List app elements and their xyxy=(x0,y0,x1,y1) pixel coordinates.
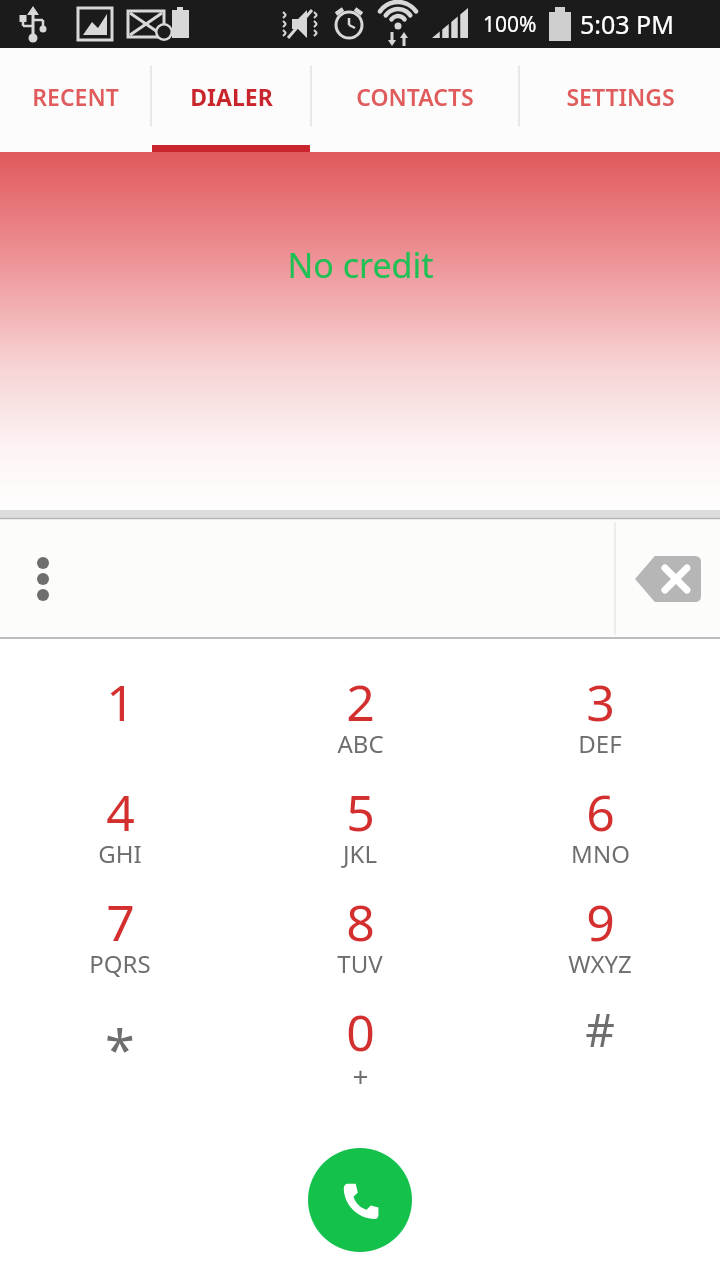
staticText: SETTINGS xyxy=(566,81,675,112)
button[interactable]: 2 xyxy=(250,668,470,778)
button[interactable]: RECENT xyxy=(0,48,151,152)
staticText: 1 xyxy=(106,668,135,736)
staticText: 5 xyxy=(346,778,375,846)
staticText: DEF xyxy=(578,727,622,760)
staticText: WXYZ xyxy=(568,947,632,980)
button[interactable]: 7 xyxy=(10,888,230,998)
staticText: PQRS xyxy=(89,947,151,980)
button[interactable]: 4 xyxy=(10,778,230,888)
staticText: 8 xyxy=(346,888,375,956)
button[interactable]: CONTACTS xyxy=(312,48,518,152)
staticText: DIALER xyxy=(190,81,273,112)
button[interactable]: 0 xyxy=(250,998,470,1108)
button[interactable]: 3 xyxy=(490,668,710,778)
button[interactable]: DIALER xyxy=(152,48,310,152)
staticText: JKL xyxy=(343,837,377,870)
staticText: + xyxy=(352,1057,369,1095)
staticText: 0 xyxy=(346,998,375,1066)
staticText: # xyxy=(585,998,615,1061)
button[interactable]: Backspace xyxy=(615,518,720,639)
staticText: RECENT xyxy=(32,81,119,112)
staticText: 3 xyxy=(586,668,615,736)
button[interactable]: 5 xyxy=(250,778,470,888)
staticText: GHI xyxy=(98,837,142,870)
staticText: 7 xyxy=(106,888,135,956)
button[interactable]: * xyxy=(10,998,230,1108)
staticText: 6 xyxy=(586,778,615,846)
button[interactable]: Call xyxy=(308,1148,412,1252)
staticText: 4 xyxy=(106,778,135,846)
staticText: No credit xyxy=(287,242,434,288)
staticText: CONTACTS xyxy=(356,81,474,112)
button[interactable]: # xyxy=(490,998,710,1108)
button[interactable]: SETTINGS xyxy=(520,48,720,152)
staticText: 5:03 PM xyxy=(580,7,674,41)
button[interactable]: More options xyxy=(0,518,86,639)
staticText: 2 xyxy=(346,668,375,736)
staticText: * xyxy=(105,1012,135,1086)
button[interactable]: 6 xyxy=(490,778,710,888)
staticText: 9 xyxy=(586,888,615,956)
button[interactable]: 9 xyxy=(490,888,710,998)
staticText: MNO xyxy=(571,837,630,870)
staticText: TUV xyxy=(337,947,383,980)
button[interactable]: 1 xyxy=(10,668,230,778)
staticText: 100% xyxy=(483,10,537,39)
staticText: ABC xyxy=(337,727,384,760)
button[interactable]: 8 xyxy=(250,888,470,998)
